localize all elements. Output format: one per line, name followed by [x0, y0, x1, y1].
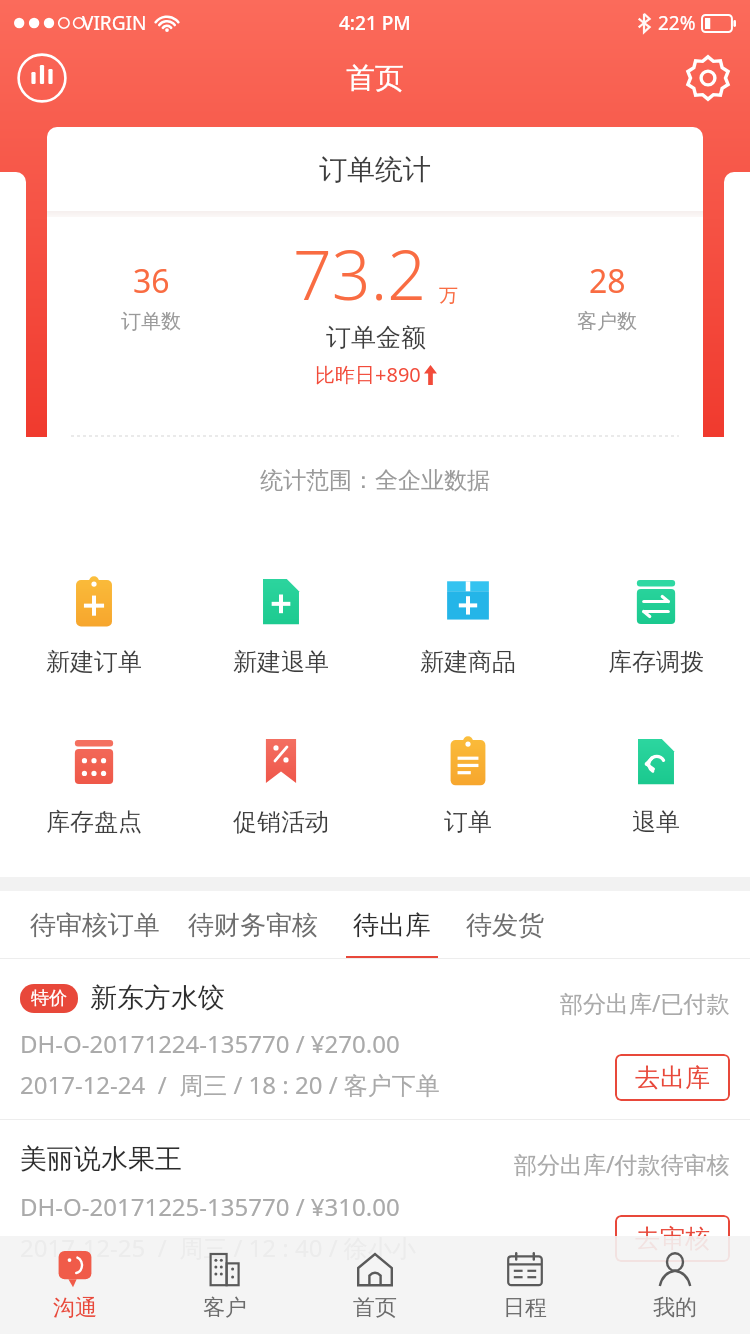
button[interactable]: 新建退单	[187, 565, 374, 681]
staticText: 客户	[203, 1294, 247, 1322]
staticText: 新建商品	[420, 647, 516, 677]
staticText: 去审核	[635, 1223, 710, 1254]
button[interactable]: 库存盘点	[0, 725, 187, 841]
staticText: 订单数	[121, 309, 181, 334]
staticText: DH-O-20171224-135770 / ¥270.00	[20, 1027, 400, 1060]
staticText: 客户数	[577, 309, 637, 334]
staticText: 22%	[658, 10, 696, 36]
staticText: 订单	[444, 807, 492, 837]
staticText: 日程	[503, 1294, 547, 1322]
staticText: 沟通	[53, 1294, 97, 1322]
staticText: 73.2	[293, 227, 427, 320]
staticText: 统计范围：全企业数据	[260, 466, 490, 495]
button[interactable]: 订单统计	[47, 127, 703, 523]
button[interactable]: 去出库	[615, 1054, 730, 1101]
button[interactable]: 促销活动	[187, 725, 374, 841]
staticText: 订单统计	[319, 152, 431, 187]
button[interactable]: 待审核订单	[16, 891, 174, 959]
button[interactable]: Settings	[682, 52, 734, 104]
button[interactable]: 待发货	[452, 891, 558, 959]
button[interactable]: 待财务审核	[174, 891, 332, 959]
staticText: 特价	[31, 987, 67, 1010]
staticText: 库存盘点	[46, 807, 142, 837]
button[interactable]: 我的	[600, 1236, 750, 1334]
staticText: 退单	[632, 807, 680, 837]
button[interactable]: 退单	[562, 725, 750, 841]
staticText: 比昨日+890	[315, 361, 421, 388]
staticText: 库存调拨	[608, 647, 704, 677]
staticText: 部分出库/付款待审核	[514, 1148, 730, 1179]
staticText: 待发货	[466, 909, 544, 942]
button[interactable]: 库存调拨	[562, 565, 750, 681]
staticText: DH-O-20171225-135770 / ¥310.00	[20, 1190, 400, 1223]
staticText: 新建订单	[46, 647, 142, 677]
staticText: 部分出库/已付款	[560, 987, 730, 1018]
staticText: 万	[439, 284, 458, 308]
staticText: 去出库	[635, 1062, 710, 1093]
staticText: 36	[133, 259, 170, 303]
staticText: 我的	[653, 1294, 697, 1322]
staticText: 28	[589, 259, 626, 303]
staticText: 待财务审核	[188, 909, 318, 942]
button[interactable]: 沟通	[0, 1236, 150, 1334]
staticText: 订单金额	[326, 322, 426, 353]
staticText: 待审核订单	[30, 909, 160, 942]
staticText: 新建退单	[233, 647, 329, 677]
staticText: 新东方水饺	[90, 981, 225, 1015]
staticText: 促销活动	[233, 807, 329, 837]
button[interactable]: 客户	[150, 1236, 300, 1334]
staticText: 2017-12-24 / 周三 / 18 : 20 / 客户下单	[20, 1068, 440, 1101]
button[interactable]: 新建订单	[0, 565, 187, 681]
button[interactable]: 待出库	[332, 891, 452, 959]
button[interactable]: 首页	[300, 1236, 450, 1334]
staticText: VIRGIN	[82, 10, 147, 36]
staticText: 美丽说水果王	[20, 1142, 182, 1176]
button[interactable]: 特价	[0, 959, 750, 1119]
button[interactable]: Statistics	[16, 52, 68, 104]
button[interactable]: 日程	[450, 1236, 600, 1334]
button[interactable]: 去审核	[615, 1215, 730, 1262]
staticText: 2017-12-25 / 周三 / 12 : 40 / 徐小小	[20, 1231, 416, 1264]
staticText: 首页	[353, 1294, 397, 1322]
staticText: 首页	[346, 60, 404, 97]
staticText: 4:21 PM	[339, 10, 411, 36]
button[interactable]: 新建商品	[374, 565, 562, 681]
button[interactable]: 订单	[374, 725, 562, 841]
button[interactable]: 美丽说水果王	[0, 1120, 750, 1280]
staticText: 待出库	[353, 909, 431, 942]
